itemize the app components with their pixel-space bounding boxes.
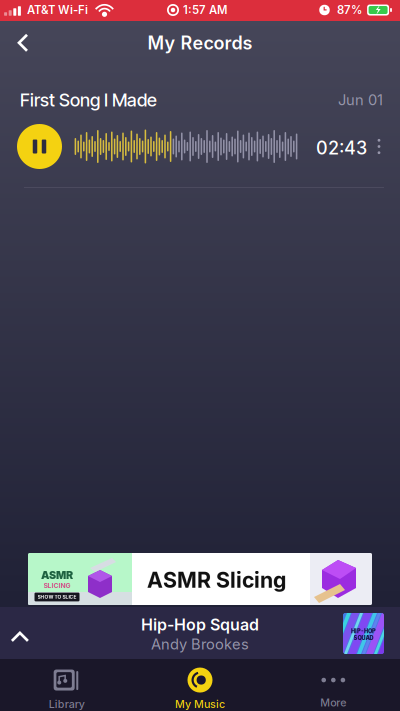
button[interactable]: Library (0, 659, 133, 711)
button[interactable]: Pause (17, 124, 62, 169)
staticText: ASMR (41, 569, 73, 581)
button[interactable]: Hip-Hop Squad (0, 607, 400, 659)
button[interactable]: Expand player (0, 615, 42, 659)
staticText: 87% (337, 3, 362, 17)
button[interactable]: More options (368, 124, 390, 169)
staticText: SLICING (43, 581, 70, 590)
staticText: More (320, 696, 346, 709)
button[interactable]: Back (0, 21, 46, 65)
button[interactable]: ASMR (28, 553, 372, 605)
staticText: My Records (147, 32, 252, 54)
staticText: AT&T Wi-Fi (27, 3, 88, 17)
staticText: My Music (175, 697, 225, 710)
staticText: Jun 01 (338, 91, 383, 109)
staticText: Andy Brookes (151, 635, 249, 653)
staticText: SHOW TO SLICE (37, 594, 76, 600)
staticText: First Song I Made (20, 89, 157, 111)
staticText: ASMR Slicing (147, 567, 286, 593)
button[interactable]: More (267, 659, 400, 711)
staticText: HIP-HOP (351, 628, 376, 634)
staticText: 02:43 (316, 137, 367, 159)
button[interactable]: My Music (133, 659, 267, 711)
staticText: Hip-Hop Squad (141, 615, 259, 634)
staticText: Library (49, 697, 85, 710)
staticText: 1:57 AM (183, 3, 227, 17)
staticText: SQUAD (353, 634, 373, 641)
